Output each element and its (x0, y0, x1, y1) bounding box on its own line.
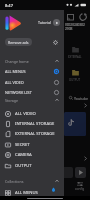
button[interactable]: OUTPUT (64, 69, 86, 82)
staticText: Tutorial (38, 20, 51, 25)
staticText: Change home (5, 59, 29, 64)
staticText: EXTERNAL STORAGE (15, 131, 55, 137)
staticText: VID20240302 2908 (65, 23, 85, 31)
button[interactable]: OUTPUT (0, 161, 64, 171)
staticText: config (75, 187, 85, 191)
button[interactable]: SECRET (0, 140, 64, 150)
button[interactable]: NETWORK LIST (0, 87, 64, 98)
button[interactable]: Cast (64, 11, 76, 23)
button[interactable]: EXTERNAL (64, 46, 86, 59)
staticText: Remove ads (8, 40, 29, 45)
staticText: Youtube (74, 96, 89, 101)
button[interactable]: Remove ads (5, 38, 32, 46)
staticText: ALL VIDEO (15, 111, 36, 117)
button[interactable]: EXTERNAL STORAGE (0, 129, 64, 139)
button[interactable]: Play (75, 167, 86, 178)
button[interactable]: Refresh (77, 11, 89, 23)
staticText: OUTPUT (69, 78, 81, 82)
staticText: SECRET (15, 142, 30, 148)
button[interactable]: Settings (51, 38, 59, 46)
button[interactable]: Storage (0, 95, 64, 105)
staticText: CAMERA (15, 152, 32, 158)
button[interactable]: ALL VIDEO (0, 77, 64, 88)
staticText: 8:47 (5, 3, 13, 8)
button[interactable]: INTERNAL STORAGE (0, 119, 64, 129)
button[interactable]: ALL MENUS (0, 188, 64, 198)
staticText: EXTERNAL (68, 55, 82, 59)
button[interactable]: Previous (62, 167, 73, 178)
button[interactable]: Tutorial (53, 19, 60, 26)
staticText: Collections (5, 179, 24, 184)
button[interactable]: ALL MENUS (0, 66, 64, 77)
button[interactable]: CAMERA (0, 150, 64, 160)
staticText: NETWORK LIST (5, 90, 32, 95)
staticText: INTERNAL STORAGE (15, 121, 55, 127)
button[interactable]: ALL VIDEO (0, 109, 64, 119)
button[interactable]: Change home (0, 56, 64, 66)
button[interactable] (64, 112, 86, 136)
staticText: OUTPUT (15, 163, 32, 169)
staticText: ALL MENUS (5, 69, 26, 74)
staticText: ALL MENUS (15, 190, 38, 196)
staticText: ALL VIDEO (5, 80, 24, 85)
button[interactable]: Collections (0, 176, 64, 186)
staticText: Storage (5, 98, 19, 103)
